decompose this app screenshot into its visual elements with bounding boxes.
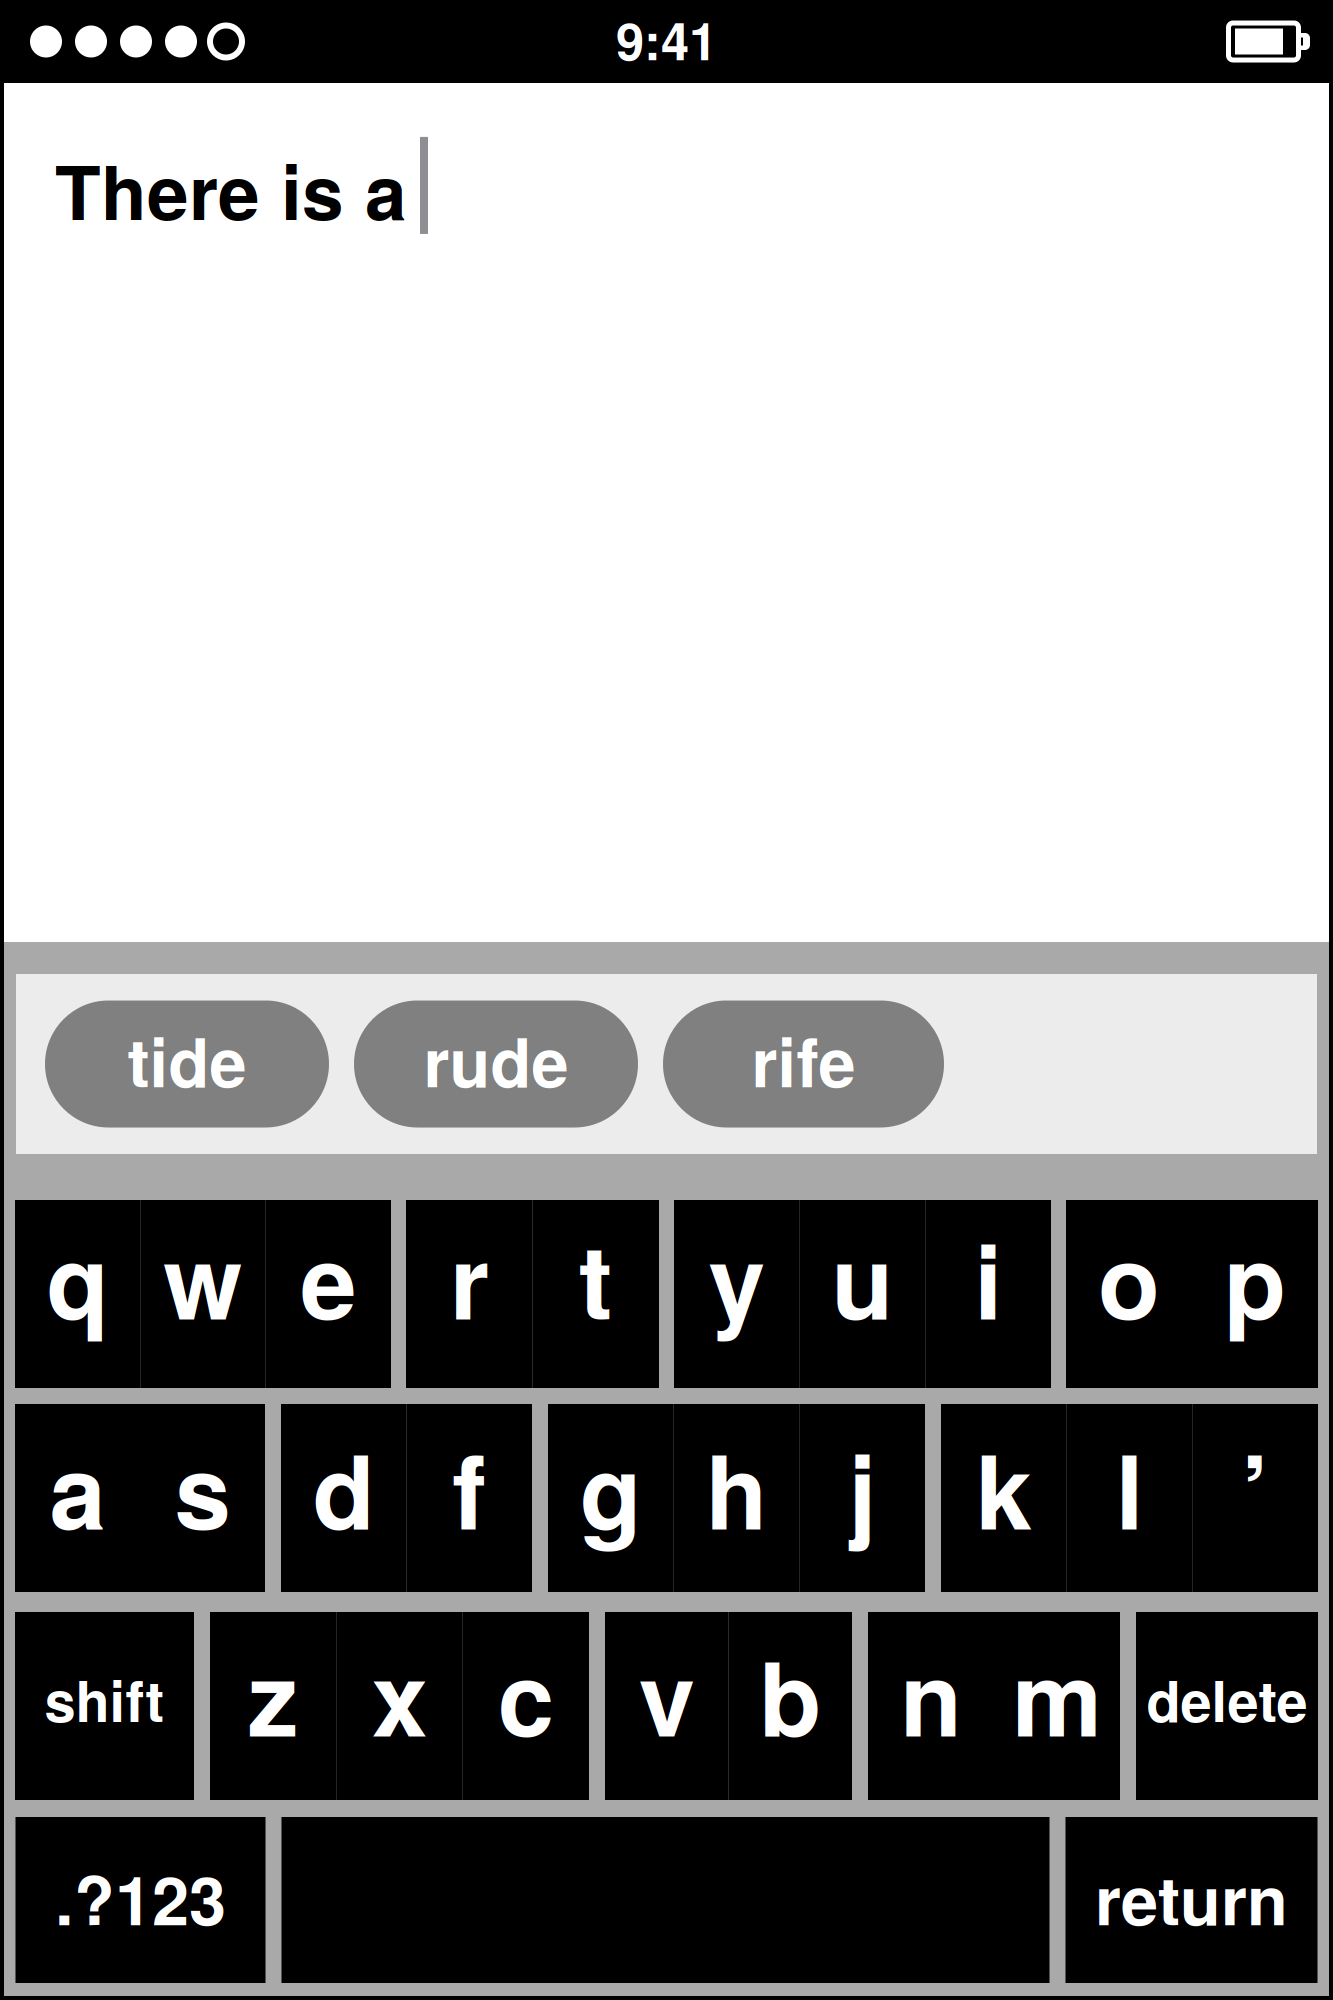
button[interactable]: j [799,1404,925,1592]
staticText: rife [751,1012,855,1108]
staticText: r [450,1205,489,1350]
staticText: o [1098,1205,1160,1350]
staticText: j [848,1415,876,1560]
staticText: l [1115,1415,1143,1560]
button[interactable]: space [281,1817,1049,1983]
button[interactable]: .?123 [15,1817,265,1983]
button[interactable]: z [210,1612,336,1800]
button[interactable]: i [925,1200,1051,1388]
button[interactable]: delete [1136,1612,1318,1800]
staticText: x [371,1622,427,1767]
button[interactable]: c [463,1612,589,1800]
button[interactable]: tide [45,1000,329,1127]
staticText: z [248,1622,299,1767]
button[interactable]: r [406,1200,532,1388]
button[interactable]: ’ [1192,1404,1318,1592]
staticText: tide [127,1012,246,1108]
button[interactable]: x [336,1612,463,1800]
button[interactable]: n [868,1612,994,1800]
button[interactable]: d [281,1404,406,1592]
staticText: m [1012,1622,1102,1767]
button[interactable]: rude [354,1000,638,1127]
button[interactable]: p [1192,1200,1318,1388]
staticText: y [709,1205,765,1350]
staticText: t [579,1205,613,1350]
staticText: shift [44,1659,164,1739]
staticText: rude [423,1012,568,1108]
button[interactable]: q [15,1200,140,1388]
staticText: d [313,1415,375,1560]
button[interactable]: return [1065,1817,1317,1983]
button[interactable]: h [674,1404,799,1592]
staticText: There is a [55,136,407,243]
staticText: .?123 [55,1850,226,1946]
staticText: p [1224,1205,1286,1350]
staticText: ’ [1241,1415,1269,1560]
staticText: b [759,1622,821,1767]
button[interactable]: rife [663,1000,944,1127]
staticText: f [452,1415,486,1560]
button[interactable]: w [140,1200,266,1388]
staticText: a [49,1415,105,1560]
staticText: v [639,1622,695,1767]
staticText: e [300,1205,356,1350]
staticText: delete [1146,1659,1307,1739]
button[interactable]: g [548,1404,674,1592]
staticText: i [974,1205,1002,1350]
button[interactable]: l [1067,1404,1192,1592]
button[interactable]: o [1066,1200,1192,1388]
button[interactable]: u [800,1200,925,1388]
staticText: u [831,1205,893,1350]
staticText: w [163,1205,242,1350]
button[interactable]: v [605,1612,728,1800]
staticText: g [580,1415,642,1560]
button[interactable]: s [140,1404,265,1592]
staticText: k [976,1415,1032,1560]
staticText: h [705,1415,767,1560]
button[interactable]: t [532,1200,659,1388]
staticText: n [900,1622,962,1767]
staticText: 9:41 [616,3,717,76]
button[interactable]: m [994,1612,1120,1800]
button[interactable]: e [266,1200,391,1388]
button[interactable]: y [674,1200,800,1388]
staticText: s [174,1415,230,1560]
button[interactable]: a [15,1404,140,1592]
staticText: c [498,1622,554,1767]
staticText: return [1095,1850,1288,1946]
button[interactable]: k [941,1404,1067,1592]
staticText: q [47,1205,109,1350]
button[interactable]: b [728,1612,852,1800]
button[interactable]: f [406,1404,532,1592]
button[interactable]: shift [15,1612,194,1800]
